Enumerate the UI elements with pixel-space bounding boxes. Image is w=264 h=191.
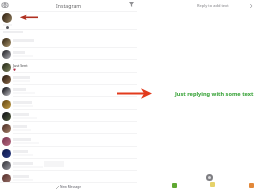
button[interactable]: App <box>210 182 215 187</box>
button[interactable]: Just Sent <box>0 61 137 73</box>
button[interactable] <box>0 172 137 184</box>
button[interactable]: Next <box>246 1 255 10</box>
button[interactable]: Filter <box>128 1 135 8</box>
staticText: New Message <box>60 185 82 189</box>
staticText: Just replying with some text <box>175 90 254 98</box>
staticText: Instagram <box>56 2 82 9</box>
button[interactable] <box>0 36 137 48</box>
button[interactable] <box>0 122 137 134</box>
staticText: Reply to add text <box>197 3 229 8</box>
button[interactable] <box>0 135 137 147</box>
button[interactable]: App <box>249 183 254 188</box>
button[interactable] <box>0 147 137 159</box>
button[interactable]: New Message <box>56 185 82 189</box>
button[interactable] <box>0 110 137 122</box>
button[interactable] <box>0 73 137 85</box>
button[interactable] <box>0 98 137 110</box>
button[interactable]: Camera <box>1 1 8 8</box>
button[interactable]: Settings <box>206 174 213 181</box>
button[interactable] <box>0 48 137 60</box>
button[interactable] <box>0 159 137 171</box>
button[interactable]: App <box>172 183 177 188</box>
staticText: Just Sent <box>13 63 28 68</box>
button[interactable] <box>0 85 137 97</box>
button[interactable] <box>0 12 137 29</box>
